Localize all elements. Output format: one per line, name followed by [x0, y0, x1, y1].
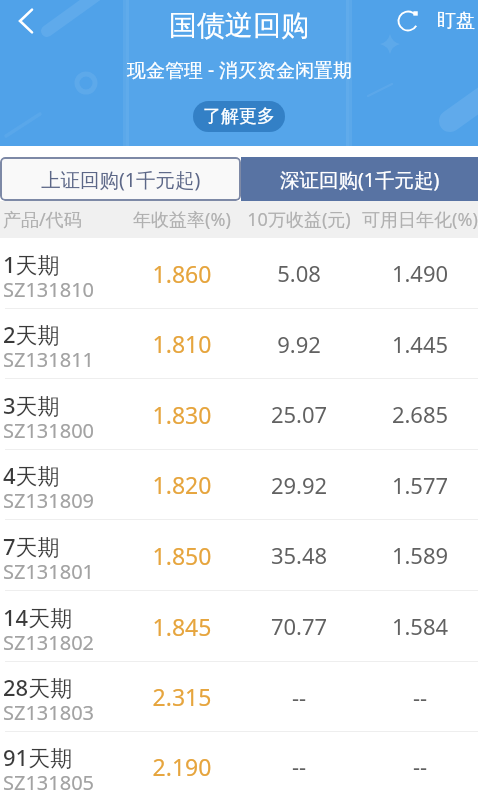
- button[interactable]: 4天期: [0, 450, 478, 520]
- staticText: --: [236, 682, 362, 712]
- button[interactable]: 了解更多: [193, 101, 285, 132]
- button[interactable]: 28天期: [0, 662, 478, 732]
- staticText: 1天期: [3, 249, 60, 279]
- staticText: 70.77: [236, 611, 362, 641]
- staticText: SZ131811: [3, 346, 95, 373]
- staticText: 2.685: [362, 399, 478, 429]
- button[interactable]: 7天期: [0, 520, 478, 591]
- staticText: 35.48: [236, 540, 362, 570]
- staticText: 产品/代码: [3, 207, 128, 232]
- button[interactable]: Back: [1, 0, 51, 46]
- staticText: 深证回购(1千元起): [280, 166, 440, 193]
- staticText: 盯盘: [437, 9, 475, 33]
- button[interactable]: 深证回购(1千元起): [241, 157, 478, 201]
- staticText: 1.445: [362, 329, 478, 359]
- staticText: 1.490: [362, 258, 478, 288]
- staticText: --: [236, 751, 362, 781]
- staticText: 1.860: [128, 258, 236, 289]
- staticText: 2.315: [128, 681, 236, 712]
- staticText: 国债逆回购: [169, 8, 309, 43]
- staticText: 1.830: [128, 399, 236, 430]
- staticText: SZ131805: [3, 769, 95, 796]
- staticText: 1.810: [128, 328, 236, 359]
- staticText: 2.190: [128, 751, 236, 782]
- staticText: 3天期: [3, 390, 60, 420]
- staticText: SZ131810: [3, 276, 95, 303]
- staticText: 1.820: [128, 469, 236, 500]
- staticText: 1.577: [362, 470, 478, 500]
- staticText: 25.07: [236, 399, 362, 429]
- staticText: 91天期: [3, 742, 73, 772]
- staticText: SZ131803: [3, 699, 95, 726]
- staticText: 1.845: [128, 611, 236, 642]
- button[interactable]: 上证回购(1千元起): [0, 157, 241, 201]
- staticText: 5.08: [236, 258, 362, 288]
- staticText: 1.584: [362, 611, 478, 641]
- staticText: --: [362, 751, 478, 781]
- button[interactable]: 2天期: [0, 309, 478, 379]
- staticText: 4天期: [3, 460, 60, 490]
- staticText: SZ131802: [3, 629, 95, 656]
- button[interactable]: 1天期: [0, 238, 478, 309]
- staticText: 1.850: [128, 540, 236, 571]
- staticText: 7天期: [3, 531, 60, 561]
- staticText: 年收益率(%): [128, 207, 236, 232]
- button[interactable]: 3天期: [0, 379, 478, 450]
- staticText: 9.92: [236, 329, 362, 359]
- staticText: SZ131800: [3, 417, 95, 444]
- button[interactable]: Refresh: [392, 5, 475, 37]
- staticText: 10万收益(元): [236, 207, 362, 232]
- staticText: SZ131809: [3, 487, 95, 514]
- staticText: 可用日年化(%): [362, 207, 478, 232]
- button[interactable]: 14天期: [0, 591, 478, 662]
- staticText: 28天期: [3, 672, 73, 702]
- staticText: SZ131801: [3, 558, 95, 585]
- button[interactable]: 91天期: [0, 732, 478, 800]
- staticText: 上证回购(1千元起): [41, 166, 201, 193]
- staticText: --: [362, 682, 478, 712]
- other: Refresh: [392, 5, 424, 37]
- staticText: 1.589: [362, 540, 478, 570]
- staticText: 了解更多: [203, 105, 275, 128]
- staticText: 2天期: [3, 319, 60, 349]
- staticText: 14天期: [3, 602, 73, 632]
- staticText: 29.92: [236, 470, 362, 500]
- staticText: 现金管理 - 消灭资金闲置期: [127, 57, 352, 83]
